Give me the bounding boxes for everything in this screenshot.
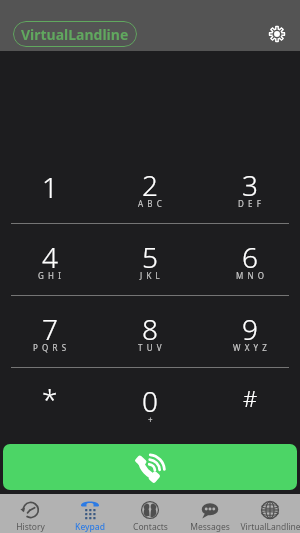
staticText: WXYZ bbox=[233, 342, 272, 353]
button[interactable]: Call bbox=[3, 444, 297, 490]
staticText: 9 bbox=[242, 310, 258, 348]
staticText: 7 bbox=[42, 310, 58, 348]
button[interactable]: Contacts bbox=[120, 494, 180, 533]
staticText: DEF bbox=[238, 198, 266, 209]
button[interactable]: 2 bbox=[100, 152, 200, 223]
button[interactable]: History bbox=[0, 494, 60, 533]
staticText: GHI bbox=[38, 270, 66, 281]
button[interactable]: Settings bbox=[269, 26, 285, 42]
button[interactable]: 7 bbox=[0, 296, 100, 367]
button[interactable]: 0 bbox=[100, 368, 200, 439]
button[interactable]: VirtualLandline bbox=[13, 21, 137, 47]
button[interactable]: # bbox=[200, 368, 300, 439]
staticText: 4 bbox=[42, 238, 58, 276]
button[interactable]: 9 bbox=[200, 296, 300, 367]
button[interactable]: 5 bbox=[100, 224, 200, 295]
staticText: TUV bbox=[138, 342, 166, 353]
staticText: VirtualLandline bbox=[21, 25, 129, 44]
button[interactable]: Keypad bbox=[60, 494, 120, 533]
staticText: 6 bbox=[242, 238, 258, 276]
staticText: Contacts bbox=[133, 521, 168, 533]
staticText: 8 bbox=[142, 310, 158, 348]
staticText: MNO bbox=[236, 270, 269, 281]
staticText: * bbox=[42, 380, 58, 418]
staticText: 1 bbox=[42, 168, 58, 206]
button[interactable]: Messages bbox=[180, 494, 240, 533]
button[interactable]: 1 bbox=[0, 152, 100, 223]
button[interactable]: VirtualLandline bbox=[240, 494, 300, 533]
button[interactable]: 6 bbox=[200, 224, 300, 295]
button[interactable]: 3 bbox=[200, 152, 300, 223]
staticText: + bbox=[148, 414, 157, 425]
staticText: 2 bbox=[142, 166, 158, 204]
staticText: 0 bbox=[142, 382, 158, 420]
staticText: # bbox=[243, 383, 258, 413]
staticText: Keypad bbox=[75, 521, 105, 533]
staticText: PQRS bbox=[33, 342, 71, 353]
button[interactable]: 8 bbox=[100, 296, 200, 367]
staticText: 5 bbox=[142, 238, 158, 276]
staticText: History bbox=[16, 521, 45, 533]
staticText: JKL bbox=[140, 270, 164, 281]
button[interactable]: * bbox=[0, 368, 100, 439]
staticText: 3 bbox=[242, 166, 258, 204]
staticText: VirtualLandline bbox=[240, 521, 300, 533]
button[interactable]: 4 bbox=[0, 224, 100, 295]
staticText: Messages bbox=[190, 521, 230, 533]
staticText: ABC bbox=[138, 198, 166, 209]
